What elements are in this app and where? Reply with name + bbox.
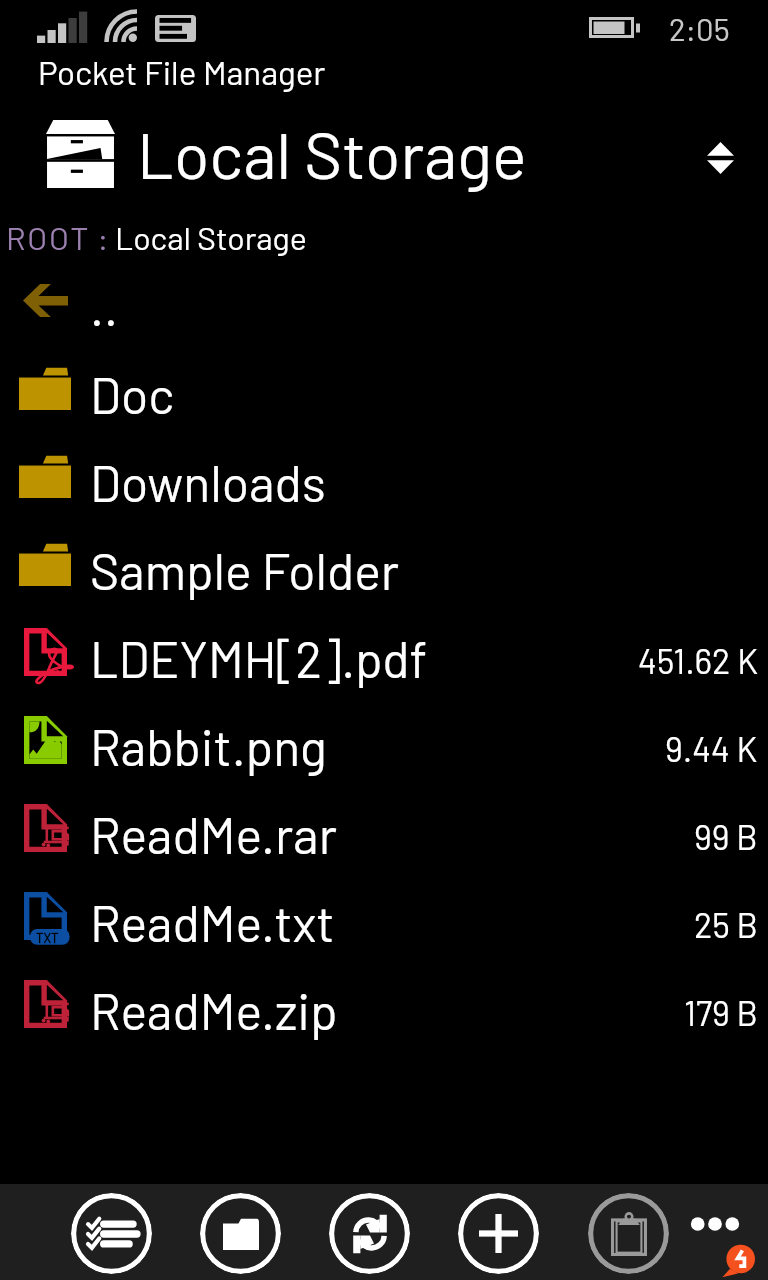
staticText: Doc [90,364,175,424]
button[interactable]: Doc [0,348,768,436]
staticText: 179 B [684,992,758,1033]
staticText: Local Storage [137,114,527,192]
staticText: 2:05 [669,10,730,47]
staticText: ReadMe.zip [90,980,338,1040]
staticText: Downloads [90,452,326,512]
staticText: 25 B [694,904,758,945]
staticText: : [91,218,115,256]
button[interactable]: .. [0,260,768,348]
button[interactable]: Refresh [329,1193,410,1274]
staticText: Local Storage [115,218,307,256]
staticText: LDEYMH[2].pdf [90,628,428,688]
button[interactable]: Paste [588,1193,669,1274]
staticText: 451.62 K [638,640,758,681]
button[interactable]: New folder [200,1193,281,1274]
staticText: .. [90,276,118,336]
staticText: 9.44 K [665,728,758,769]
button[interactable]: LDEYMH[2].pdf [0,612,768,700]
button[interactable]: Rabbit.png [0,700,768,788]
button[interactable]: TXT [0,876,768,964]
button[interactable]: Downloads [0,436,768,524]
button[interactable]: More options [688,1210,742,1238]
button[interactable]: Sample Folder [0,524,768,612]
button[interactable]: ReadMe.zip [0,964,768,1052]
staticText: ReadMe.rar [90,804,337,864]
button[interactable]: ReadMe.rar [0,788,768,876]
button[interactable]: Sort [692,131,748,185]
button[interactable]: Select [71,1193,152,1274]
staticText: 99 B [694,816,758,857]
staticText: TXT [36,930,59,946]
staticText: Pocket File Manager [38,52,326,92]
staticText: Rabbit.png [90,716,327,776]
staticText: ReadMe.txt [90,892,335,952]
staticText: Sample Folder [90,540,400,600]
staticText: ROOT [6,218,91,256]
button[interactable]: Add [458,1193,539,1274]
